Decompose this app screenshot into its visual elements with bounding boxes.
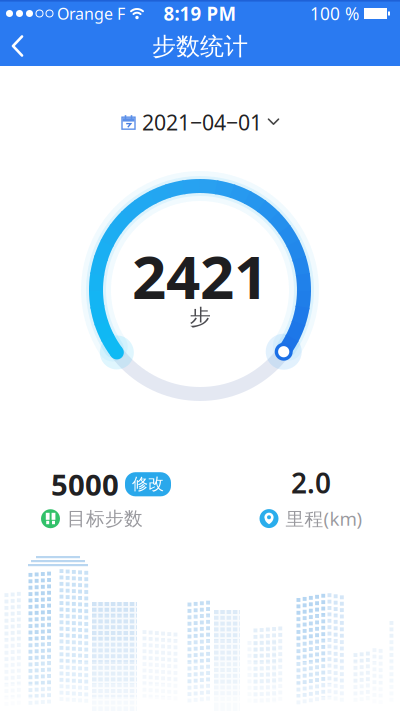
button[interactable]: 修改 bbox=[125, 472, 171, 496]
staticText: 2021−04−01 bbox=[142, 108, 262, 136]
staticText: 8:19 PM bbox=[163, 1, 236, 26]
button[interactable]: Back bbox=[0, 31, 38, 61]
staticText: 步 bbox=[189, 304, 210, 330]
staticText: Orange F bbox=[57, 3, 125, 24]
staticText: 里程(km) bbox=[285, 506, 362, 531]
staticText: 修改 bbox=[132, 474, 164, 494]
staticText: 2.0 bbox=[291, 464, 331, 501]
staticText: 2421 bbox=[132, 236, 268, 316]
staticText: 步数统计 bbox=[152, 32, 248, 61]
staticText: 5000 bbox=[51, 465, 119, 504]
staticText: 目标步数 bbox=[67, 507, 143, 530]
button[interactable]: 2021−04−01 bbox=[121, 108, 279, 136]
staticText: 100 % bbox=[310, 2, 359, 25]
